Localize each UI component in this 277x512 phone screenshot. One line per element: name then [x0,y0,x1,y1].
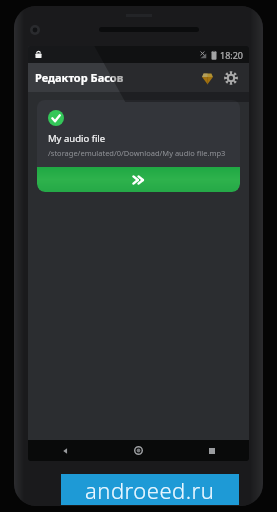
staticText: /storage/emulated/0/Download/My audio fi… [48,148,226,158]
staticText: My audio file [48,132,106,145]
button[interactable]: Premium [196,67,218,89]
staticText: Редактор Басов [35,70,124,85]
button[interactable]: Continue [37,167,240,192]
button[interactable]: Recent apps [175,440,249,461]
button[interactable]: Back [28,440,101,461]
button[interactable]: My audio file [37,100,240,192]
staticText: androeed.ru [85,475,215,505]
staticText: 18:20 [220,49,244,61]
button[interactable]: Home [101,440,175,461]
button[interactable]: Settings [220,67,242,89]
